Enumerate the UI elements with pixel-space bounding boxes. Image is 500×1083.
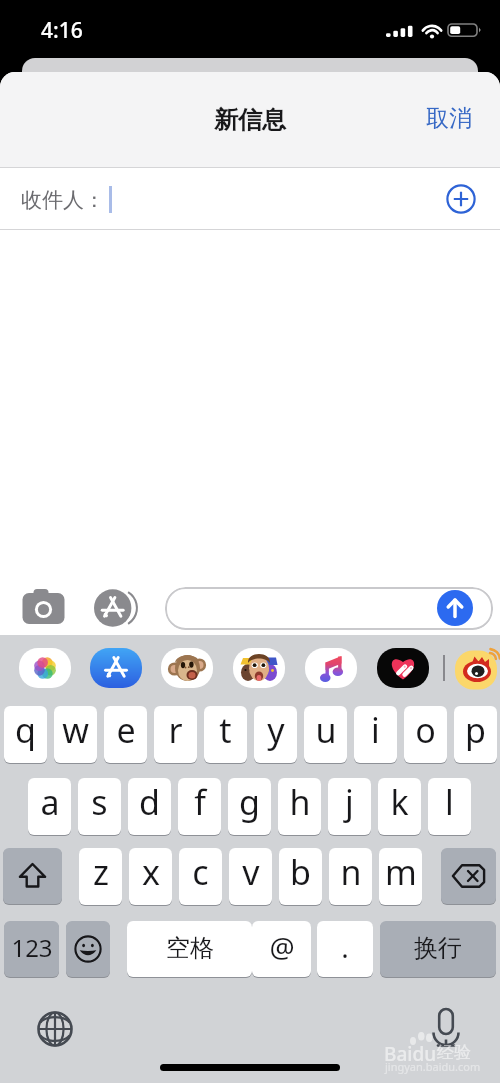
staticText: w	[62, 707, 89, 753]
staticText: y	[267, 707, 285, 753]
button[interactable]: g	[228, 778, 271, 835]
staticText: q	[15, 707, 36, 753]
button[interactable]: p	[454, 706, 497, 763]
button[interactable]: 123	[4, 921, 59, 977]
button[interactable]: w	[54, 706, 97, 763]
button[interactable]: c	[179, 848, 222, 905]
button[interactable]: Send	[437, 590, 473, 626]
button[interactable]: Weibo	[455, 649, 497, 691]
staticText: c	[192, 849, 209, 895]
staticText: a	[40, 779, 60, 825]
staticText: u	[315, 707, 337, 753]
staticText: 123	[11, 931, 53, 964]
button[interactable]: q	[4, 706, 47, 763]
button[interactable]: Dictation	[427, 1008, 465, 1046]
button[interactable]: h	[278, 778, 321, 835]
staticText: j	[345, 779, 354, 825]
button[interactable]: Memoji monkey	[161, 648, 213, 688]
button[interactable]: j	[328, 778, 371, 835]
staticText: i	[371, 707, 380, 753]
staticText: 空格	[166, 933, 214, 963]
staticText: .	[341, 928, 349, 966]
button[interactable]: Memoji	[233, 648, 285, 688]
button[interactable]: m	[379, 848, 422, 905]
button[interactable]: @	[252, 921, 311, 977]
button[interactable]: Music	[305, 648, 357, 688]
button[interactable]: s	[78, 778, 121, 835]
staticText: 经验	[437, 1042, 471, 1063]
button[interactable]: .	[317, 921, 373, 977]
staticText: 4:16	[41, 16, 83, 45]
button[interactable]: t	[204, 706, 247, 763]
button[interactable]: Camera	[18, 587, 68, 629]
staticText: jingyan.baidu.com	[385, 1059, 481, 1074]
staticText: z	[93, 849, 109, 895]
staticText: g	[239, 779, 260, 825]
button[interactable]: Activity	[377, 648, 429, 688]
staticText: h	[289, 779, 311, 825]
staticText: Baidu	[384, 1041, 437, 1067]
button[interactable]: y	[254, 706, 297, 763]
staticText: n	[340, 849, 362, 895]
staticText: p	[465, 707, 486, 753]
staticText: d	[139, 779, 160, 825]
staticText: 收件人：	[21, 187, 105, 213]
button[interactable]: f	[178, 778, 221, 835]
staticText: 新信息	[214, 105, 286, 135]
button[interactable]: 空格	[127, 921, 252, 977]
button[interactable]: 换行	[380, 921, 496, 977]
button[interactable]: u	[304, 706, 347, 763]
button[interactable]: k	[378, 778, 421, 835]
button[interactable]: z	[79, 848, 122, 905]
staticText: l	[445, 779, 454, 825]
button[interactable]: i	[354, 706, 397, 763]
staticText: b	[290, 849, 311, 895]
staticText: @	[269, 928, 295, 966]
staticText: m	[385, 849, 417, 895]
button[interactable]: e	[104, 706, 147, 763]
staticText: t	[219, 707, 232, 753]
button[interactable]: Switch keyboard	[37, 1011, 73, 1047]
staticText: v	[242, 849, 260, 895]
button[interactable]: App Store	[90, 648, 142, 688]
button[interactable]: v	[229, 848, 272, 905]
button[interactable]: b	[279, 848, 322, 905]
button[interactable]: Add contact	[443, 181, 479, 217]
button[interactable]: l	[428, 778, 471, 835]
button[interactable]	[165, 587, 493, 630]
button[interactable]: 取消	[414, 99, 484, 138]
button[interactable]: d	[128, 778, 171, 835]
button[interactable]: Shift	[3, 848, 62, 904]
button[interactable]: App Store	[92, 587, 138, 629]
staticText: o	[415, 707, 436, 753]
button[interactable]: x	[129, 848, 172, 905]
staticText: 换行	[414, 933, 462, 963]
button[interactable]: a	[28, 778, 71, 835]
staticText: 取消	[426, 104, 472, 133]
staticText: e	[116, 707, 136, 753]
button[interactable]: n	[329, 848, 372, 905]
button[interactable]: Photos	[19, 648, 71, 688]
button[interactable]: o	[404, 706, 447, 763]
button[interactable]: Backspace	[441, 848, 496, 904]
staticText: x	[142, 849, 160, 895]
staticText: s	[91, 779, 108, 825]
staticText: f	[194, 779, 206, 825]
staticText: r	[168, 707, 183, 753]
button[interactable]: Emoji	[66, 921, 110, 977]
staticText: k	[390, 779, 409, 825]
button[interactable]: r	[154, 706, 197, 763]
